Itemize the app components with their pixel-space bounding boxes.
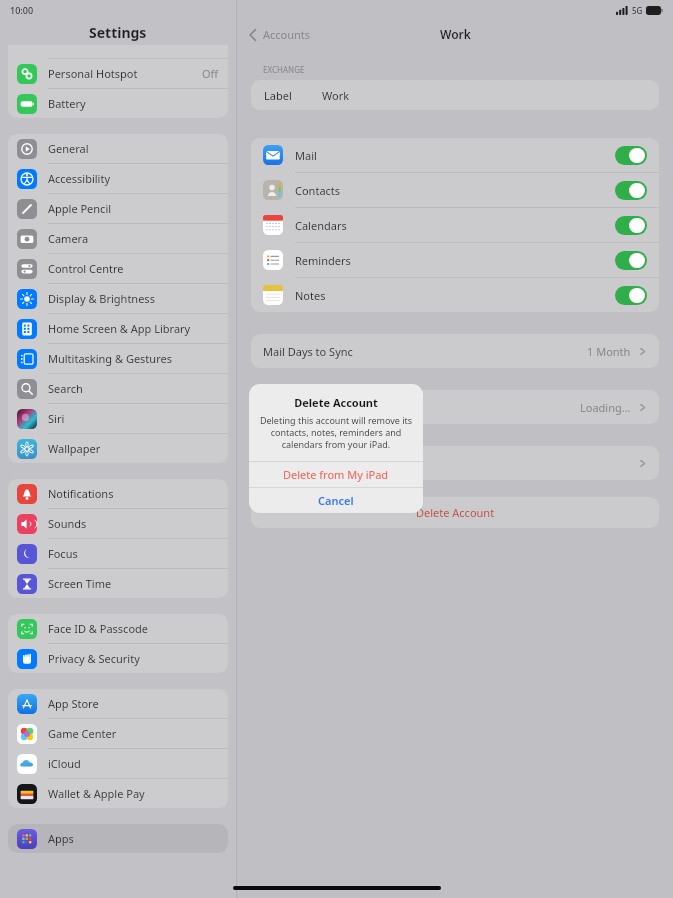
button[interactable]: App Store [8,689,228,718]
staticText: 1 Month [587,344,631,359]
button[interactable]: Accounts [237,27,319,42]
button[interactable] [251,446,659,480]
button[interactable]: Accessibility [8,164,228,193]
staticText: Work [322,88,350,103]
staticText: Reminders [295,253,351,268]
button[interactable]: Face ID & Passcode [8,614,228,643]
staticText: Game Center [48,726,117,741]
staticText: Settings [89,23,147,42]
button[interactable]: Personal Hotspot [8,59,228,88]
button[interactable]: Calendars [251,208,659,242]
button[interactable]: Cancel [249,488,423,513]
staticText: Siri [48,411,65,426]
staticText: Multitasking & Gestures [48,351,172,366]
button[interactable]: Game Center [8,719,228,748]
staticText: Deleting this account will remove its co… [259,414,413,450]
button[interactable]: Search [8,374,228,403]
button[interactable]: Toggle on [615,146,647,165]
button[interactable]: iCloud [8,749,228,778]
staticText: 5G [632,5,643,16]
button[interactable]: Screen Time [8,569,228,598]
staticText: Wallpaper [48,441,101,456]
button[interactable]: Toggle on [615,286,647,305]
button[interactable]: Control Centre [8,254,228,283]
button[interactable]: General [8,134,228,163]
button[interactable]: Display & Brightness [8,284,228,313]
staticText: Search [48,381,83,396]
button[interactable]: Wallet & Apple Pay [8,779,228,808]
button[interactable]: Privacy & Security [8,644,228,673]
staticText: Delete from My iPad [283,467,389,482]
staticText: Calendars [295,218,347,233]
button[interactable]: Sounds [8,509,228,538]
staticText: Mail Days to Sync [263,344,353,359]
staticText: Home Screen & App Library [48,321,191,336]
staticText: Personal Hotspot [48,66,138,81]
staticText: Display & Brightness [48,291,155,306]
staticText: Cancel [318,493,354,508]
staticText: Camera [48,231,89,246]
button[interactable]: Loading… [251,390,659,424]
staticText: Work [440,26,471,42]
staticText: Apple Pencil [48,201,112,216]
staticText: Sounds [48,516,87,531]
button[interactable]: Multitasking & Gestures [8,344,228,373]
staticText: Notifications [48,486,114,501]
staticText: Wallet & Apple Pay [48,786,145,801]
button[interactable]: Mail Days to Sync [251,334,659,368]
staticText: Label [264,88,292,103]
button[interactable]: Notes [251,278,659,312]
staticText: EXCHANGE [263,64,305,75]
button[interactable]: Delete Account [251,497,659,528]
button[interactable]: Label [251,80,659,110]
staticText: Mail [295,148,317,163]
button[interactable]: Apps [8,824,228,853]
button[interactable]: Reminders [251,243,659,277]
staticText: Privacy & Security [48,651,140,666]
staticText: Notes [295,288,326,303]
button[interactable]: Battery [8,89,228,118]
staticText: Control Centre [48,261,124,276]
staticText: Battery [48,96,86,111]
staticText: Delete Account [416,505,495,520]
staticText: Face ID & Passcode [48,621,149,636]
button[interactable]: Camera [8,224,228,253]
button[interactable]: Delete from My iPad [249,462,423,487]
staticText: Screen Time [48,576,112,591]
staticText: 10:00 [10,4,34,16]
staticText: Off [202,66,219,81]
staticText: iCloud [48,756,81,771]
button[interactable]: Toggle on [615,181,647,200]
button[interactable]: Home Screen & App Library [8,314,228,343]
button[interactable]: Notifications [8,479,228,508]
staticText: App Store [48,696,99,711]
staticText: Accessibility [48,171,111,186]
button[interactable]: Wallpaper [8,434,228,463]
staticText: Apps [48,831,74,846]
button[interactable]: Siri [8,404,228,433]
staticText: Delete Account [249,395,423,410]
button[interactable]: Toggle on [615,216,647,235]
button[interactable]: Apple Pencil [8,194,228,223]
button[interactable]: Mail [251,138,659,172]
staticText: Focus [48,546,78,561]
button[interactable]: Toggle on [615,251,647,270]
staticText: Loading… [580,400,631,415]
button[interactable]: Contacts [251,173,659,207]
button[interactable]: Focus [8,539,228,568]
staticText: Accounts [263,27,311,42]
staticText: General [48,141,89,156]
staticText: Contacts [295,183,341,198]
